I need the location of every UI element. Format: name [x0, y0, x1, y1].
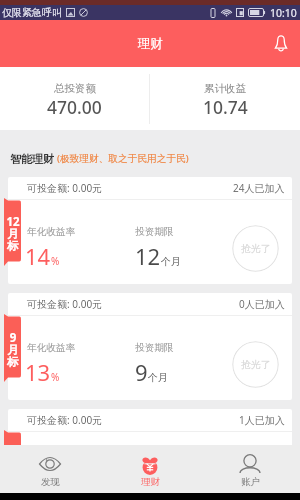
staticText: 账户: [241, 476, 260, 488]
staticText: 投资期限: [135, 342, 174, 354]
button[interactable]: 抢光了: [232, 341, 279, 388]
staticText: 投资期限: [135, 226, 174, 238]
button[interactable]: 累计收益: [150, 78, 300, 120]
staticText: 理财: [138, 36, 163, 52]
staticText: 个月: [148, 487, 168, 500]
staticText: 累计收益: [204, 82, 246, 95]
staticText: 可投金额: 0.00元: [27, 181, 103, 195]
staticText: 12: [25, 473, 51, 500]
staticText: 14: [25, 241, 51, 271]
staticText: 24人已加入: [233, 181, 285, 195]
staticText: 仅限紧急呼叫: [2, 6, 62, 19]
staticText: 理财: [141, 476, 160, 488]
button[interactable]: 可投金额: 0.00元: [8, 293, 292, 400]
button[interactable]: 总投资额: [0, 78, 149, 120]
staticText: %: [51, 254, 60, 268]
button[interactable]: 抢光了: [232, 457, 279, 500]
staticText: 可投金额: 0.00元: [27, 413, 103, 427]
button[interactable]: 发现: [0, 445, 100, 493]
staticText: 12月标: [6, 214, 20, 253]
staticText: 9月标: [6, 330, 20, 369]
staticText: 抢光了: [241, 358, 271, 371]
staticText: 0人已加入: [239, 297, 285, 311]
staticText: 投资期限: [135, 458, 174, 470]
staticText: 12: [135, 241, 161, 271]
staticText: 10.74: [203, 95, 248, 119]
staticText: (极致理财、取之于民用之于民): [57, 152, 189, 165]
button[interactable]: 抢光了: [232, 225, 279, 272]
staticText: 年化收益率: [27, 226, 76, 238]
staticText: 1人已加入: [239, 413, 285, 427]
button[interactable]: Notifications: [267, 30, 295, 58]
button[interactable]: 可投金额: 0.00元: [8, 177, 292, 284]
staticText: 年化收益率: [27, 342, 76, 354]
staticText: 个月: [161, 255, 181, 268]
staticText: 总投资额: [54, 82, 96, 95]
staticText: 个月: [148, 371, 168, 384]
staticText: 可投金额: 0.00元: [27, 297, 103, 311]
staticText: 年化收益率: [27, 458, 76, 470]
staticText: 9: [135, 357, 148, 387]
button[interactable]: 理财: [100, 445, 200, 493]
staticText: %: [51, 370, 60, 384]
staticText: 13: [25, 357, 51, 387]
staticText: 发现: [41, 476, 60, 488]
staticText: 6: [135, 473, 148, 500]
staticText: 10:10: [270, 6, 297, 20]
staticText: 抢光了: [241, 242, 271, 255]
staticText: 智能理财: [10, 152, 54, 166]
button[interactable]: 可投金额: 0.00元: [8, 409, 292, 500]
staticText: 470.00: [47, 95, 102, 119]
staticText: 抢光了: [241, 474, 271, 487]
button[interactable]: 账户: [200, 445, 300, 493]
staticText: %: [51, 486, 60, 500]
